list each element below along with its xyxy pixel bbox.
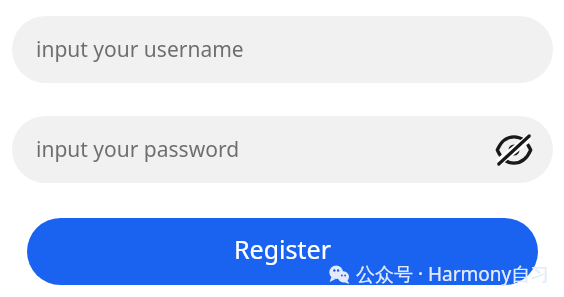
button[interactable]: input your password	[12, 116, 553, 183]
button[interactable]: input your username	[12, 16, 553, 83]
staticText: 公众号 · Harmony自习	[356, 261, 550, 287]
button[interactable]: Register	[27, 218, 538, 285]
staticText: Register	[234, 232, 331, 266]
button[interactable]: Show password	[492, 128, 536, 172]
staticText: input your username	[36, 35, 244, 64]
staticText: input your password	[36, 135, 240, 164]
